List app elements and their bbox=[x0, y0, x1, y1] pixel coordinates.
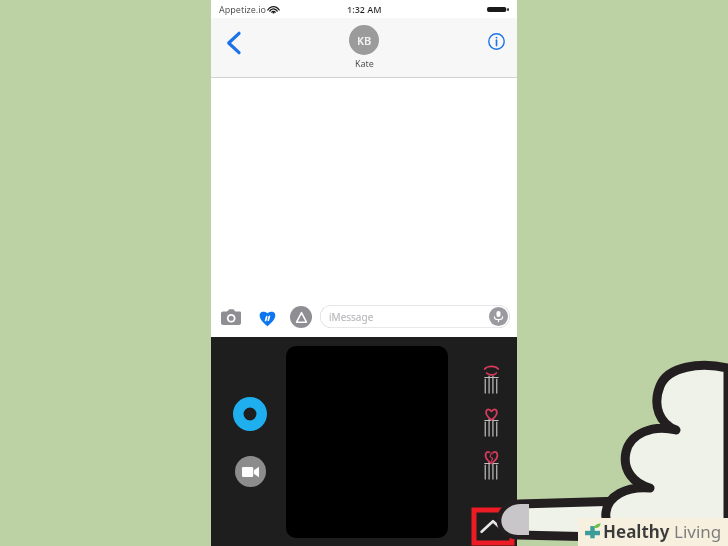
button[interactable]: Details bbox=[483, 28, 509, 54]
button[interactable]: Digital Touch bbox=[254, 304, 280, 330]
staticText: Living bbox=[674, 520, 722, 543]
button[interactable]: Camera bbox=[218, 304, 244, 330]
button[interactable]: Record video bbox=[235, 456, 266, 487]
button[interactable]: App Store bbox=[290, 306, 312, 328]
staticText: KB bbox=[357, 33, 372, 48]
button[interactable]: Choose color bbox=[233, 397, 267, 431]
staticText: Kate bbox=[355, 57, 374, 69]
staticText: 1:32 AM bbox=[347, 3, 382, 15]
button[interactable]: iMessage bbox=[320, 305, 510, 328]
staticText: Healthy bbox=[603, 520, 670, 543]
button[interactable]: Dictate bbox=[489, 307, 508, 326]
button[interactable]: Expand bbox=[474, 510, 512, 543]
button[interactable]: KB bbox=[349, 25, 379, 69]
button[interactable]: Back bbox=[217, 26, 251, 60]
staticText: iMessage bbox=[329, 310, 374, 324]
staticText: Appetize.io bbox=[219, 3, 266, 15]
